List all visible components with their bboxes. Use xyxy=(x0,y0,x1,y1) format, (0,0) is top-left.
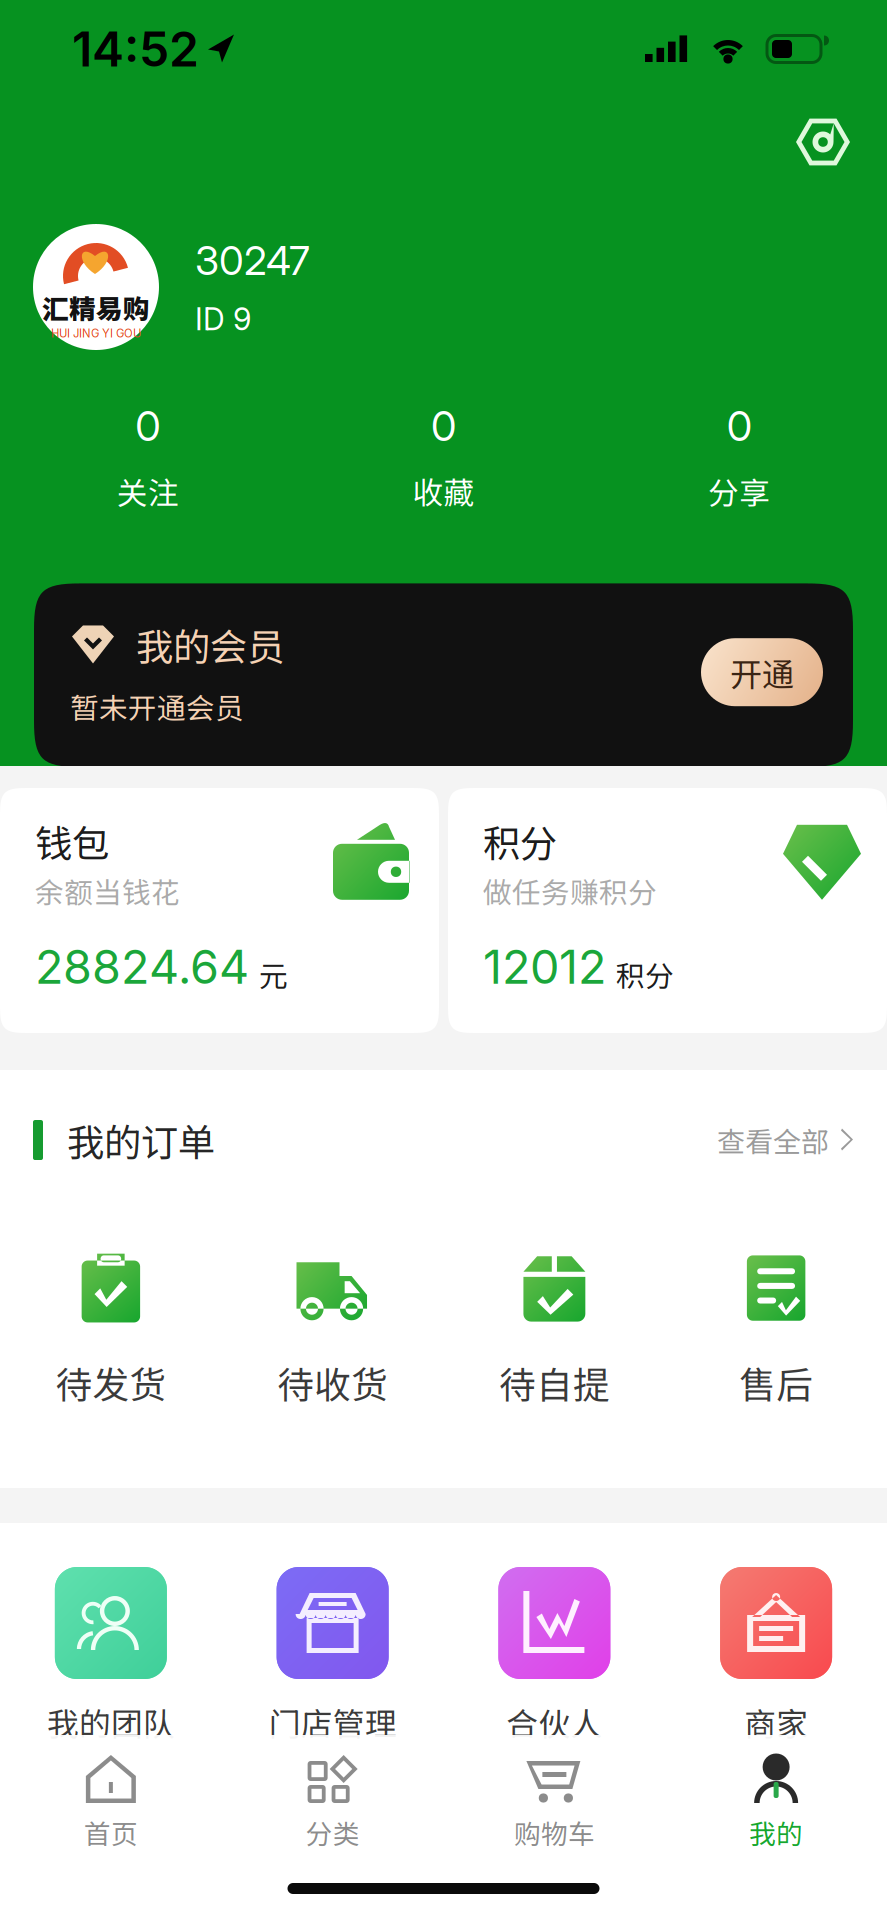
button[interactable]: 0 xyxy=(591,401,887,513)
staticText: 待自提 xyxy=(499,1356,610,1409)
staticText: 开通 xyxy=(730,649,794,695)
staticText: 元 xyxy=(259,953,288,995)
staticText: 分享 xyxy=(708,469,770,513)
staticText: 待收货 xyxy=(277,1356,388,1409)
button[interactable]: 我的 xyxy=(665,1753,887,1852)
staticText: 28824.64 xyxy=(35,938,249,995)
staticText: 我的团队 xyxy=(47,1699,175,1745)
staticText: 12012 xyxy=(483,938,606,995)
staticText: 积分 xyxy=(616,953,674,995)
button[interactable]: 购物车 xyxy=(443,1753,665,1852)
button[interactable]: Settings xyxy=(794,113,852,171)
button[interactable]: 首页 xyxy=(0,1753,222,1852)
button[interactable]: 合伙人 xyxy=(443,1567,665,1745)
button[interactable]: 0 xyxy=(296,401,591,513)
button[interactable]: 门店管理 xyxy=(222,1567,444,1745)
staticText: 做任务赚积分 xyxy=(483,870,657,912)
button[interactable]: 开通 xyxy=(701,638,823,706)
button[interactable]: 查看全部 xyxy=(717,1120,854,1160)
button[interactable]: 0 xyxy=(0,401,296,513)
button[interactable]: 钱包 xyxy=(0,788,439,1033)
button[interactable]: 商家 xyxy=(665,1567,887,1745)
staticText: 30247 xyxy=(195,236,310,285)
staticText: 积分 xyxy=(483,814,557,868)
staticText: 暂未开通会员 xyxy=(70,685,244,727)
staticText: 0 xyxy=(727,401,752,451)
staticText: 购物车 xyxy=(514,1813,595,1852)
staticText: 我的 xyxy=(749,1813,803,1852)
staticText: 售后 xyxy=(739,1356,813,1409)
button[interactable]: 分类 xyxy=(222,1753,444,1852)
button[interactable]: 待自提 xyxy=(443,1253,665,1409)
staticText: 首页 xyxy=(84,1813,138,1852)
button[interactable]: 待发货 xyxy=(0,1253,222,1409)
staticText: 钱包 xyxy=(35,814,109,868)
button[interactable]: 售后 xyxy=(665,1253,887,1409)
staticText: 门店管理 xyxy=(269,1699,397,1745)
staticText: 汇精易购 xyxy=(42,288,150,327)
staticText: 分类 xyxy=(306,1813,360,1852)
staticText: 收藏 xyxy=(412,469,474,513)
staticText: 商家 xyxy=(744,1699,808,1745)
staticText: 我的会员 xyxy=(136,617,284,671)
staticText: 查看全部 xyxy=(717,1120,829,1160)
staticText: 待发货 xyxy=(55,1356,166,1409)
button[interactable]: 我的团队 xyxy=(0,1567,222,1745)
staticText: 余额当钱花 xyxy=(35,870,180,912)
staticText: 0 xyxy=(135,401,160,451)
staticText: 合伙人 xyxy=(506,1699,602,1745)
staticText: 我的订单 xyxy=(67,1113,215,1167)
staticText: 关注 xyxy=(117,469,179,513)
button[interactable]: 待收货 xyxy=(222,1253,444,1409)
button[interactable]: 积分 xyxy=(448,788,887,1033)
staticText: 0 xyxy=(431,401,456,451)
staticText: HUI JING YI GOU xyxy=(51,327,141,340)
staticText: 14:52 xyxy=(72,20,199,78)
staticText: ID 9 xyxy=(195,301,251,338)
